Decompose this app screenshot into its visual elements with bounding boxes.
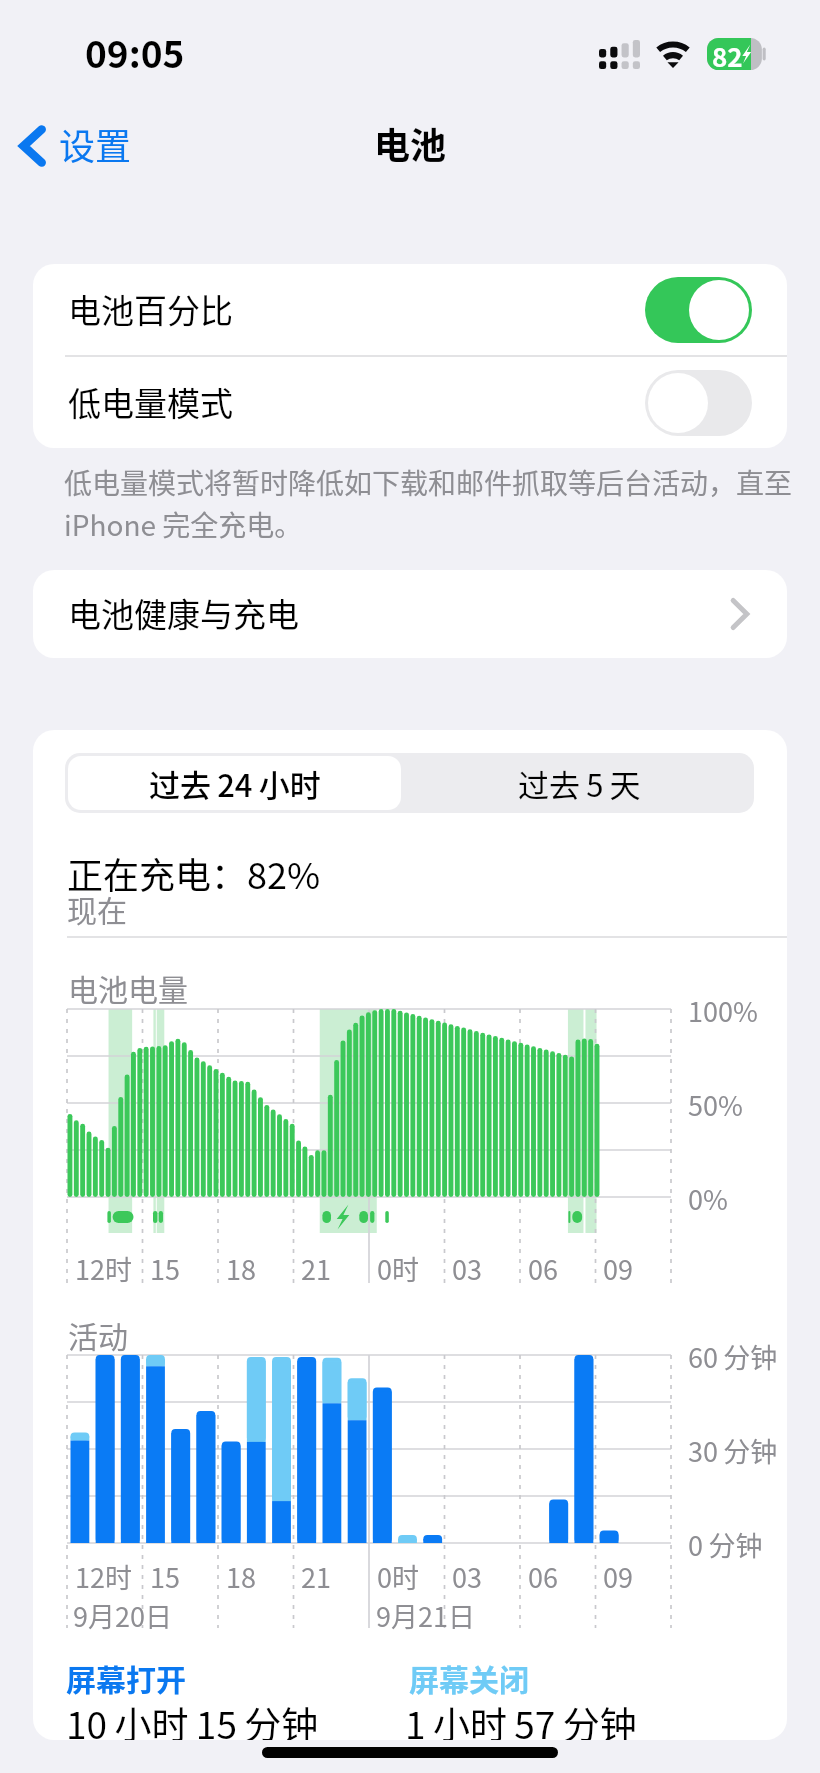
staticText: iPhone 完全充电。 (64, 504, 804, 545)
staticText: 电池健康与充电 (68, 589, 299, 637)
staticText: 现在 (67, 887, 127, 930)
staticText: 正在充电：82% (67, 847, 321, 899)
staticText: 30 分钟 (688, 1431, 778, 1470)
staticText: 15 (150, 1249, 180, 1288)
button[interactable]: Back (21, 120, 132, 172)
staticText: 电池 (374, 117, 447, 169)
staticText: 09 (603, 1557, 633, 1596)
button[interactable]: 低电量模式 (33, 357, 787, 448)
staticText: 9月21日 (376, 1596, 475, 1635)
other: Back (21, 128, 44, 164)
staticText: 15 (150, 1557, 180, 1596)
staticText: 09 (603, 1249, 633, 1288)
staticText: 0 分钟 (688, 1525, 763, 1564)
staticText: 0时 (377, 1557, 419, 1596)
staticText: 50% (688, 1085, 743, 1124)
staticText: 18 (226, 1557, 256, 1596)
staticText: 0% (688, 1179, 728, 1218)
staticText: 18 (226, 1249, 256, 1288)
button[interactable]: 电池健康与充电 (33, 570, 787, 658)
staticText: 过去 5 天 (518, 761, 641, 806)
staticText: 低电量模式 (68, 378, 233, 426)
staticText: 06 (528, 1249, 558, 1288)
staticText: 06 (528, 1557, 558, 1596)
button[interactable]: 过去 5 天 (404, 753, 754, 813)
staticText: 屏幕打开 (66, 1656, 186, 1699)
staticText: 100% (688, 991, 758, 1030)
staticText: 21 (301, 1557, 331, 1596)
staticText: 0时 (377, 1249, 419, 1288)
staticText: 60 分钟 (688, 1337, 778, 1376)
staticText: 电池电量 (68, 966, 188, 1009)
staticText: 过去 24 小时 (149, 761, 321, 806)
button[interactable]: 过去 24 小时 (68, 756, 401, 810)
staticText: 21 (301, 1249, 331, 1288)
staticText: 9月20日 (73, 1596, 172, 1635)
staticText: 09:05 (85, 25, 185, 79)
staticText: 屏幕关闭 (409, 1656, 529, 1699)
staticText: 12时 (75, 1557, 132, 1596)
staticText: 10 小时 15 分钟 (66, 1696, 319, 1740)
staticText: 设置 (59, 118, 132, 170)
staticText: 82 (712, 37, 743, 69)
staticText: 活动 (68, 1313, 128, 1356)
staticText: 低电量模式将暂时降低如下载和邮件抓取等后台活动，直至 (64, 462, 804, 503)
staticText: 1 小时 57 分钟 (405, 1696, 637, 1740)
button[interactable]: 电池百分比 (33, 264, 787, 355)
staticText: 03 (452, 1557, 482, 1596)
staticText: 12时 (75, 1249, 132, 1288)
staticText: 03 (452, 1249, 482, 1288)
staticText: 电池百分比 (68, 285, 233, 333)
